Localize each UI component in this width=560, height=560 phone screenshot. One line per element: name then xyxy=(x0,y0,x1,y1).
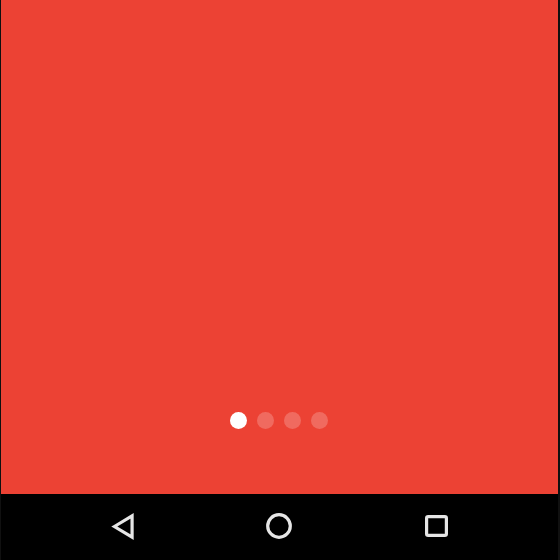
button[interactable]: Go to page 2 xyxy=(257,412,274,429)
button[interactable]: Page 1, selected xyxy=(230,412,247,429)
button[interactable]: Recent apps xyxy=(403,494,469,560)
button[interactable]: Go to page 3 xyxy=(284,412,301,429)
button[interactable]: Back xyxy=(90,494,156,560)
button[interactable]: Home xyxy=(246,494,312,560)
button[interactable]: Go to page 4 xyxy=(311,412,328,429)
